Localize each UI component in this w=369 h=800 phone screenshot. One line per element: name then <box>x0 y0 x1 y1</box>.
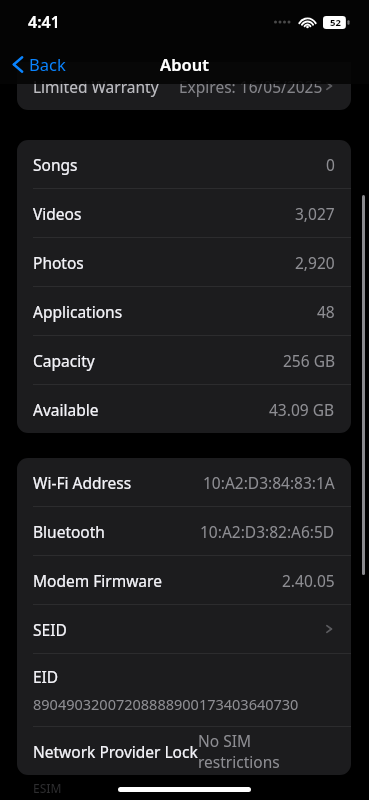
staticText: 4:41 <box>28 11 60 33</box>
staticText: Videos <box>33 203 82 224</box>
staticText: 89049032007208888900173403640730 <box>33 694 299 714</box>
staticText: 2,920 <box>295 252 335 273</box>
button[interactable]: Limited Warranty <box>17 62 351 110</box>
staticText: 3,027 <box>295 203 335 224</box>
button[interactable]: Available <box>17 385 351 433</box>
staticText: 52 <box>330 16 341 29</box>
button[interactable]: Applications <box>17 287 351 335</box>
staticText: Wi-Fi Address <box>33 472 132 493</box>
staticText: Expires: 16/05/2025 <box>179 76 323 97</box>
staticText: SEID <box>33 619 67 640</box>
button[interactable]: Photos <box>17 238 351 286</box>
button[interactable]: Bluetooth <box>17 507 351 555</box>
staticText: Network Provider Lock <box>33 741 198 762</box>
staticText: 2.40.05 <box>282 570 335 591</box>
staticText: Photos <box>33 252 84 273</box>
button[interactable]: SEID <box>17 605 351 653</box>
staticText: ESIM <box>33 780 62 796</box>
staticText: Songs <box>33 154 78 175</box>
staticText: Available <box>33 399 99 420</box>
button[interactable]: Network Provider Lock <box>17 727 351 775</box>
staticText: Limited Warranty <box>33 76 159 97</box>
button[interactable]: Videos <box>17 189 351 237</box>
staticText: Applications <box>33 301 123 322</box>
staticText: Capacity <box>33 350 95 371</box>
button[interactable]: Modem Firmware <box>17 556 351 604</box>
button[interactable]: Capacity <box>17 336 351 384</box>
staticText: 48 <box>317 301 335 322</box>
button[interactable]: EID <box>17 654 351 726</box>
staticText: 43.09 GB <box>269 399 335 420</box>
staticText: EID <box>33 666 59 687</box>
staticText: About <box>160 53 209 75</box>
staticText: No SIM restrictions <box>198 730 335 772</box>
staticText: Modem Firmware <box>33 570 162 591</box>
button[interactable]: Back <box>8 47 70 81</box>
button[interactable]: Wi-Fi Address <box>17 458 351 506</box>
staticText: 256 GB <box>283 350 335 371</box>
staticText: 10:A2:D3:84:83:1A <box>203 472 335 493</box>
staticText: 10:A2:D3:82:A6:5D <box>200 521 335 542</box>
button[interactable]: Songs <box>17 140 351 188</box>
staticText: 0 <box>326 154 335 175</box>
staticText: Back <box>29 53 66 75</box>
staticText: Bluetooth <box>33 521 105 542</box>
